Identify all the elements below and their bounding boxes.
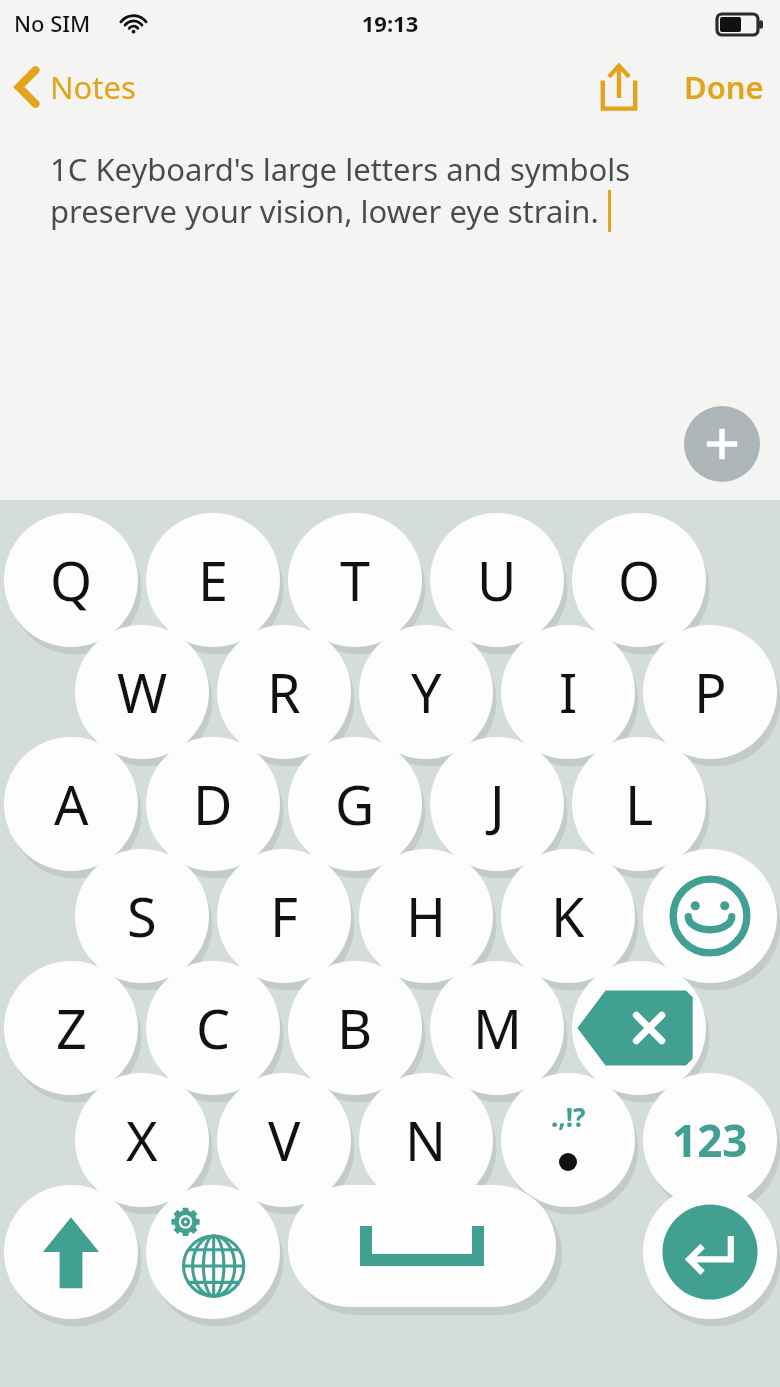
staticText: G xyxy=(335,767,375,841)
button[interactable]: C xyxy=(146,961,280,1095)
staticText: L xyxy=(625,767,654,841)
button[interactable]: G xyxy=(288,737,422,871)
staticText: Y xyxy=(411,655,442,729)
button[interactable]: Switch language xyxy=(146,1185,280,1319)
button[interactable]: L xyxy=(572,737,706,871)
button[interactable]: Share xyxy=(586,49,652,125)
staticText: 19:13 xyxy=(0,8,780,38)
button[interactable]: S xyxy=(75,849,209,983)
button[interactable]: Backspace xyxy=(572,961,706,1095)
button[interactable]: Shift xyxy=(4,1185,138,1319)
button[interactable]: Q xyxy=(4,513,138,647)
staticText: .,!? xyxy=(551,1099,586,1134)
staticText: preserve your vision, lower eye strain. xyxy=(50,190,599,232)
button[interactable]: E xyxy=(146,513,280,647)
button[interactable]: R xyxy=(217,625,351,759)
button[interactable]: I xyxy=(501,625,635,759)
button[interactable]: N xyxy=(359,1073,493,1207)
staticText: Z xyxy=(56,991,87,1065)
button[interactable]: D xyxy=(146,737,280,871)
staticText: R xyxy=(267,655,301,729)
staticText: Done xyxy=(684,66,764,108)
staticText: P xyxy=(694,655,727,729)
staticText: F xyxy=(270,879,299,953)
staticText: O xyxy=(618,543,661,617)
staticText: No SIM xyxy=(14,8,91,38)
button[interactable]: Return xyxy=(643,1185,777,1319)
button[interactable]: Space xyxy=(288,1185,556,1307)
button[interactable]: F xyxy=(217,849,351,983)
button[interactable]: H xyxy=(359,849,493,983)
staticText: U xyxy=(477,543,517,617)
staticText: W xyxy=(117,655,168,729)
button[interactable]: U xyxy=(430,513,564,647)
staticText: N xyxy=(405,1103,447,1177)
button[interactable]: Z xyxy=(4,961,138,1095)
button[interactable]: Y xyxy=(359,625,493,759)
staticText: S xyxy=(127,879,157,953)
staticText: H xyxy=(406,879,447,953)
button[interactable]: Numbers xyxy=(643,1073,777,1207)
button[interactable]: B xyxy=(288,961,422,1095)
staticText: E xyxy=(198,543,229,617)
button[interactable]: Add attachment xyxy=(684,406,760,482)
button[interactable]: Notes xyxy=(0,56,150,118)
staticText: T xyxy=(340,543,371,617)
staticText: J xyxy=(490,767,505,841)
button[interactable]: P xyxy=(643,625,777,759)
button[interactable]: Done xyxy=(666,54,780,120)
staticText: B xyxy=(337,991,373,1065)
staticText: I xyxy=(559,655,578,729)
staticText: D xyxy=(193,767,233,841)
button[interactable]: K xyxy=(501,849,635,983)
staticText: K xyxy=(551,879,585,953)
button[interactable]: O xyxy=(572,513,706,647)
staticText: X xyxy=(126,1103,158,1177)
button[interactable]: V xyxy=(217,1073,351,1207)
button[interactable]: T xyxy=(288,513,422,647)
staticText: 1C Keyboard's large letters and symbols xyxy=(50,148,631,190)
staticText: A xyxy=(54,767,89,841)
button[interactable]: W xyxy=(75,625,209,759)
staticText: Q xyxy=(50,543,93,617)
button[interactable]: Punctuation xyxy=(501,1073,635,1207)
button[interactable]: A xyxy=(4,737,138,871)
staticText: C xyxy=(196,991,231,1065)
staticText: M xyxy=(473,991,522,1065)
button[interactable]: X xyxy=(75,1073,209,1207)
button[interactable]: Emoji xyxy=(643,849,777,983)
staticText: V xyxy=(268,1103,301,1177)
staticText: 123 xyxy=(672,1110,748,1170)
button[interactable]: J xyxy=(430,737,564,871)
staticText: Notes xyxy=(50,66,136,108)
button[interactable]: M xyxy=(430,961,564,1095)
